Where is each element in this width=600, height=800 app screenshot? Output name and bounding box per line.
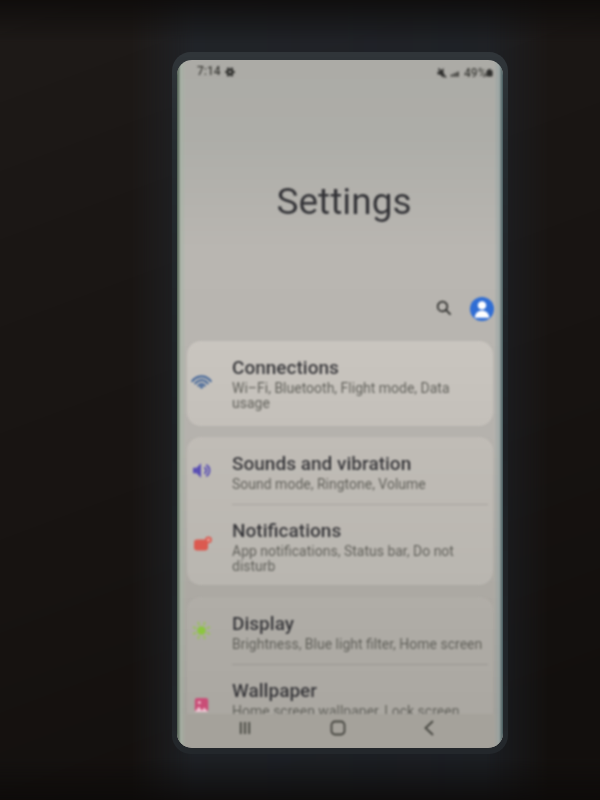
staticText: Sound mode, Ringtone, Volume	[232, 476, 493, 492]
button[interactable]: Home	[308, 714, 368, 742]
button[interactable]: Wallpaper	[187, 664, 493, 745]
button[interactable]: Display	[187, 597, 493, 664]
staticText: Display	[232, 612, 295, 634]
staticText: Notifications	[232, 519, 342, 541]
staticText: 7:14	[197, 64, 221, 78]
staticText: Home screen wallpaper, Lock screen	[232, 703, 493, 719]
staticText: Sounds and vibration	[232, 452, 412, 474]
button[interactable]: Sounds and vibration	[187, 437, 493, 504]
staticText: 49%	[464, 66, 487, 80]
button[interactable]: Recent apps	[215, 714, 275, 742]
button[interactable]: Account	[470, 297, 494, 321]
staticText: Wallpaper	[232, 679, 317, 701]
button[interactable]: Search	[427, 291, 459, 323]
staticText: Settings	[181, 180, 503, 223]
button[interactable]: Connections	[187, 341, 493, 426]
button[interactable]: Back	[399, 714, 459, 742]
staticText: Connections	[232, 356, 339, 378]
button[interactable]: Notifications	[187, 504, 493, 585]
staticText: Wi–Fi, Bluetooth, Flight mode, Data usag…	[232, 380, 493, 411]
staticText: App notifications, Status bar, Do not di…	[232, 543, 493, 574]
staticText: Brightness, Blue light filter, Home scre…	[232, 636, 493, 652]
